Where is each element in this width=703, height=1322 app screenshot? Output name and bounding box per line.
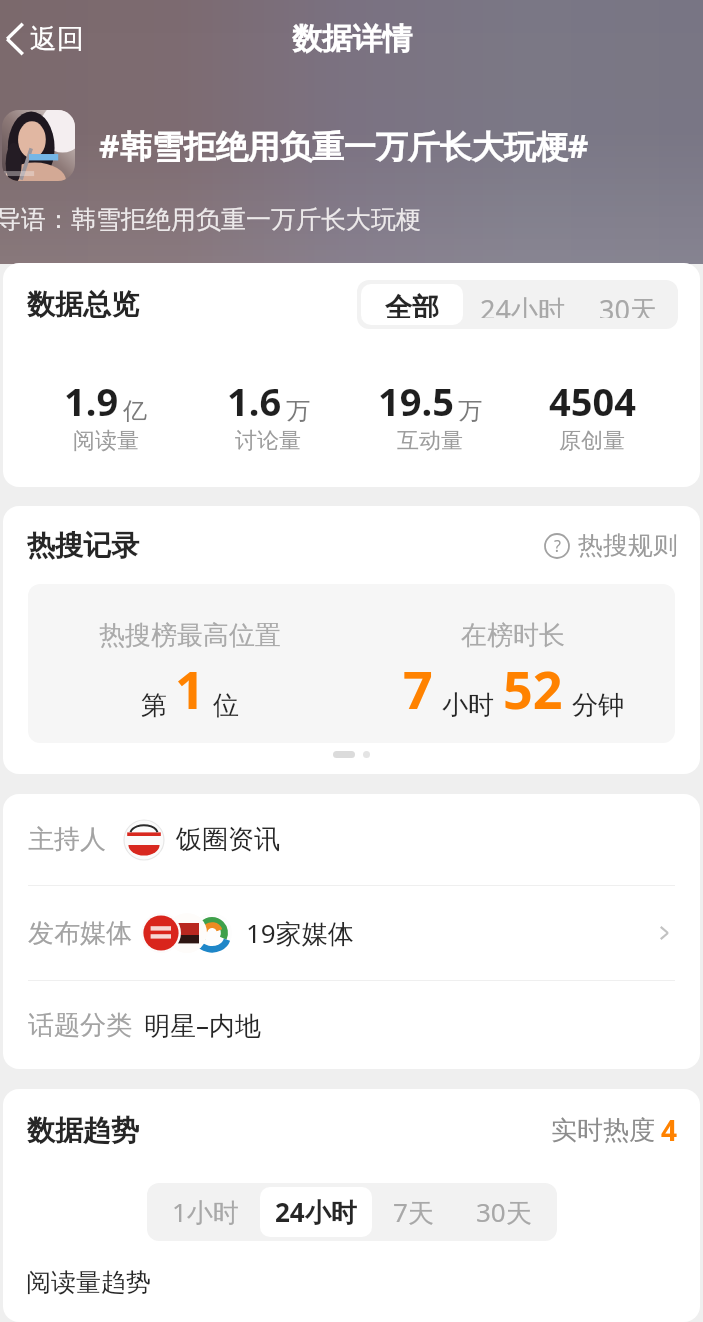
button[interactable]: 30天 xyxy=(582,284,674,325)
staticText: 话题分类 xyxy=(28,1009,132,1042)
staticText: 小时 xyxy=(442,689,494,722)
staticText: 阅读量 xyxy=(73,427,139,455)
staticText: 7 xyxy=(403,653,433,724)
staticText: 1 xyxy=(175,653,205,724)
staticText: 数据趋势 xyxy=(27,1113,139,1148)
staticText: 实时热度 xyxy=(551,1114,655,1147)
staticText: 主持人 xyxy=(28,823,106,856)
staticText: 万 xyxy=(286,396,310,426)
staticText: 位 xyxy=(213,689,239,722)
staticText: 4504 xyxy=(549,375,636,427)
staticText: 互动量 xyxy=(397,427,463,455)
staticText: 19家媒体 xyxy=(246,915,354,951)
button[interactable]: 发布媒体 xyxy=(28,886,675,980)
staticText: 数据详情 xyxy=(292,20,412,58)
staticText: 52 xyxy=(503,653,563,724)
button[interactable]: 返回 xyxy=(0,14,94,64)
staticText: 第 xyxy=(141,689,167,722)
button[interactable]: 7天 xyxy=(372,1187,455,1237)
staticText: 分钟 xyxy=(572,689,624,722)
staticText: 原创量 xyxy=(559,427,625,455)
staticText: 亿 xyxy=(123,396,147,426)
button[interactable]: 30天 xyxy=(455,1187,553,1237)
staticText: 30天 xyxy=(599,291,657,318)
staticText: 导语：韩雪拒绝用负重一万斤长大玩梗 xyxy=(0,204,421,235)
button[interactable]: 1小时 xyxy=(151,1187,260,1237)
staticText: 19.5 xyxy=(378,375,454,427)
staticText: 热搜榜最高位置 xyxy=(99,619,281,652)
staticText: 1小时 xyxy=(172,1194,239,1230)
staticText: 全部 xyxy=(385,291,439,318)
staticText: 返回 xyxy=(30,22,84,56)
staticText: 发布媒体 xyxy=(28,917,132,950)
staticText: ? xyxy=(554,535,561,557)
staticText: #韩雪拒绝用负重一万斤长大玩梗# xyxy=(99,124,589,168)
staticText: 阅读量趋势 xyxy=(26,1267,151,1298)
button[interactable]: 全部 xyxy=(361,284,463,325)
staticText: 1.6 xyxy=(227,375,282,427)
staticText: 1.9 xyxy=(64,375,119,427)
button[interactable]: 24小时 xyxy=(463,284,582,325)
staticText: 4 xyxy=(661,1111,678,1149)
staticText: 热搜规则 xyxy=(578,530,678,561)
staticText: 万 xyxy=(458,396,482,426)
staticText: 数据总览 xyxy=(27,287,139,322)
staticText: 在榜时长 xyxy=(461,619,565,652)
button[interactable]: ? xyxy=(544,530,678,561)
button[interactable]: 24小时 xyxy=(260,1187,372,1237)
staticText: 7天 xyxy=(393,1194,434,1230)
staticText: 热搜记录 xyxy=(27,528,139,563)
staticText: 饭圈资讯 xyxy=(176,823,280,856)
staticText: 明星–内地 xyxy=(144,1007,262,1043)
staticText: 30天 xyxy=(476,1194,532,1230)
staticText: 24小时 xyxy=(480,291,565,318)
other: More media xyxy=(653,922,675,944)
staticText: 讨论量 xyxy=(235,427,301,455)
staticText: 24小时 xyxy=(275,1194,357,1230)
